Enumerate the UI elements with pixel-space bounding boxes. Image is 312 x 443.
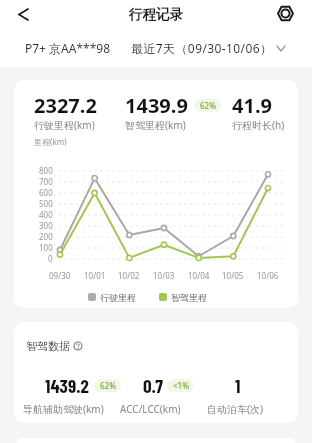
staticText: 行程记录 xyxy=(129,6,183,23)
staticText: 09/30 xyxy=(49,270,71,281)
staticText: 智驾里程 xyxy=(171,292,207,303)
staticText: 10/05 xyxy=(222,270,244,281)
staticText: 300 xyxy=(39,220,53,231)
staticText: 10/01 xyxy=(84,270,106,281)
staticText: 行驶里程(km) xyxy=(34,118,95,132)
staticText: ACC/LCC(km) xyxy=(120,402,181,416)
staticText: <1% xyxy=(173,380,189,391)
staticText: 100 xyxy=(39,242,53,253)
button[interactable]: 最近7天（09/30-10/06） xyxy=(131,38,285,58)
staticText: 41.9 xyxy=(232,92,272,119)
staticText: 自动泊车(次) xyxy=(207,402,263,416)
staticText: 1 xyxy=(235,374,241,397)
staticText: 里程(km) xyxy=(34,136,67,147)
staticText: 500 xyxy=(39,198,53,209)
staticText: 2327.2 xyxy=(34,92,97,119)
staticText: 200 xyxy=(39,231,53,242)
staticText: 400 xyxy=(39,209,53,220)
staticText: 1439.9 xyxy=(125,92,188,119)
staticText: 10/06 xyxy=(257,270,279,281)
staticText: 行程时长(h) xyxy=(232,118,285,132)
staticText: 0 xyxy=(48,253,53,264)
staticText: 10/02 xyxy=(118,270,140,281)
staticText: 62% xyxy=(100,380,116,391)
staticText: 智驾里程(km) xyxy=(125,118,186,132)
staticText: 800 xyxy=(39,165,53,176)
staticText: P7+ 京AA***98 xyxy=(25,40,111,56)
staticText: 0.7 xyxy=(143,374,163,397)
staticText: 智驾数据 xyxy=(26,339,70,353)
staticText: 600 xyxy=(39,187,53,198)
staticText: 行驶里程 xyxy=(100,292,136,303)
staticText: 700 xyxy=(39,176,53,187)
staticText: 62% xyxy=(200,100,216,111)
button[interactable]: P7+ 京AA***98 xyxy=(25,38,111,58)
staticText: 最近7天（09/30-10/06） xyxy=(131,40,273,56)
staticText: 导航辅助驾驶(km) xyxy=(23,402,104,416)
staticText: 10/03 xyxy=(153,270,175,281)
button[interactable] xyxy=(12,3,34,25)
staticText: 1439.2 xyxy=(45,374,89,397)
button[interactable] xyxy=(272,0,298,26)
staticText: 10/04 xyxy=(188,270,210,281)
